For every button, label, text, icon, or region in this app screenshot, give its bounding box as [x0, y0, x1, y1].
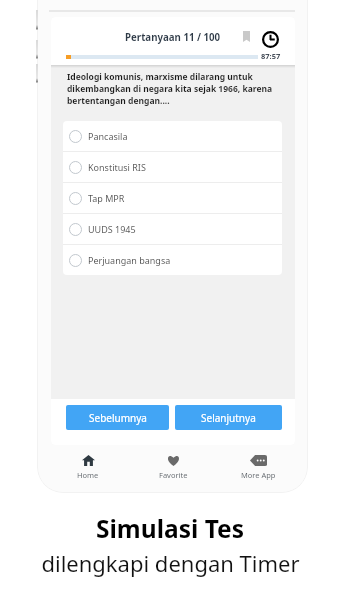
staticText: More App — [241, 470, 276, 480]
staticText: Selanjutnya — [201, 411, 256, 425]
staticText: Ideologi komunis, marxisme dilarang untu… — [67, 71, 277, 107]
staticText: Pancasila — [88, 130, 128, 142]
button[interactable]: Selanjutnya — [175, 405, 282, 430]
staticText: Simulasi Tes — [96, 512, 244, 545]
staticText: dilengkapi dengan Timer — [41, 548, 300, 578]
staticText: Sebelumnya — [89, 411, 147, 425]
staticText: Tap MPR — [88, 192, 125, 204]
staticText: Perjuangan bangsa — [88, 254, 171, 266]
button[interactable]: Pancasila — [63, 121, 282, 151]
staticText: 87:57 — [261, 51, 281, 61]
button[interactable]: Perjuangan bangsa — [63, 245, 282, 275]
button[interactable]: Home — [58, 446, 118, 492]
button[interactable]: Favorite — [143, 446, 203, 492]
staticText: Konstitusi RIS — [88, 161, 146, 173]
button[interactable]: Tap MPR — [63, 183, 282, 213]
staticText: UUDS 1945 — [88, 223, 136, 235]
staticText: Favorite — [159, 470, 188, 480]
button[interactable]: Bookmark — [238, 28, 254, 44]
button[interactable]: Timer — [261, 30, 280, 49]
button[interactable]: Sebelumnya — [66, 405, 169, 430]
button[interactable]: More App — [228, 446, 288, 492]
button[interactable]: Konstitusi RIS — [63, 152, 282, 182]
staticText: Home — [77, 470, 99, 480]
button[interactable]: UUDS 1945 — [63, 214, 282, 244]
staticText: Pertanyaan 11 / 100 — [125, 31, 221, 44]
